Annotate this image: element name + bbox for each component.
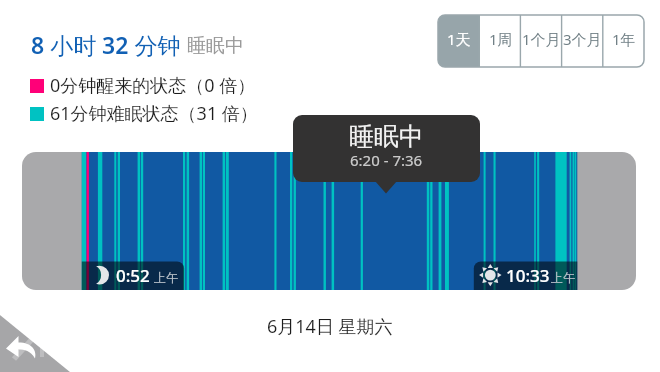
staticText: 61分钟难眠状态（31 倍） <box>50 101 258 126</box>
button[interactable]: 3个月 <box>562 15 603 67</box>
staticText: 6:20 - 7:36 <box>350 150 423 170</box>
button[interactable]: 1周 <box>480 15 521 67</box>
button[interactable]: 1个月 <box>521 15 562 67</box>
button[interactable]: 1年 <box>603 15 644 67</box>
staticText: 睡眠中 <box>187 34 244 58</box>
staticText: 睡眠中 <box>349 121 424 152</box>
button[interactable]: 睡眠图表 <box>22 152 636 290</box>
staticText: 10:33 <box>506 264 550 287</box>
staticText: 3个月 <box>563 29 602 49</box>
staticText: 1年 <box>612 29 636 49</box>
staticText: 1个月 <box>522 29 561 49</box>
staticText: 8 小时 32 分钟 <box>31 29 181 60</box>
staticText: 0分钟醒来的状态（0 倍） <box>50 73 256 98</box>
staticText: 1周 <box>489 29 513 49</box>
button[interactable]: 1天 <box>438 15 480 67</box>
staticText: 1天 <box>447 29 471 49</box>
staticText: 6月14日 星期六 <box>267 314 393 339</box>
staticText: 上午 <box>551 270 575 285</box>
staticText: 上午 <box>154 270 178 285</box>
button[interactable]: 睡眠中 6:20 - 7:36 <box>293 115 480 195</box>
staticText: 0:52 <box>116 264 150 287</box>
